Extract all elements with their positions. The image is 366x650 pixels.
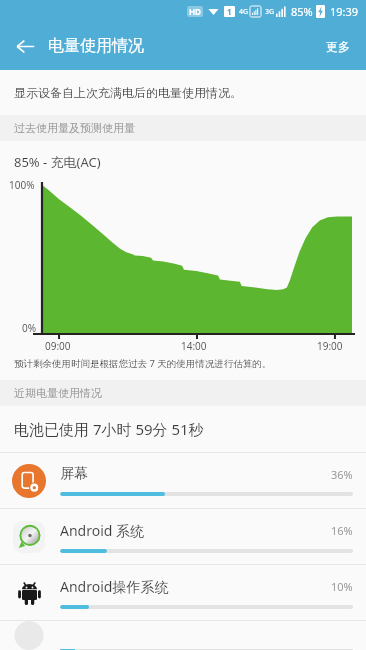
staticText: 屏幕 [60, 465, 331, 483]
staticText: 过去使用量及预测使用量 [14, 121, 135, 135]
staticText: 09:00 [45, 339, 71, 353]
staticText: HD [189, 6, 201, 17]
staticText: 1 [227, 6, 232, 17]
button[interactable]: 更多 [318, 31, 358, 62]
staticText: 19:00 [317, 339, 343, 353]
staticText: 更多 [326, 39, 350, 54]
staticText: 电量使用情况 [48, 36, 144, 56]
button[interactable]: 屏幕 [0, 453, 366, 508]
button[interactable]: Android 系统 [0, 509, 366, 564]
staticText: 近期电量使用情况 [14, 386, 102, 400]
staticText: 85% - 充电(AC) [14, 153, 101, 171]
staticText: 100% [9, 178, 35, 192]
staticText: 0% [22, 321, 37, 335]
staticText: 4G [239, 7, 249, 17]
staticText: 85% [291, 4, 313, 19]
staticText: 10% [331, 579, 353, 594]
staticText: 电池已使用 7小时 59分 51秒 [14, 419, 204, 439]
staticText: 显示设备自上次充满电后的电量使用情况。 [14, 85, 242, 100]
staticText: Android操作系统 [60, 577, 331, 596]
staticText: 3G [265, 7, 275, 17]
staticText: 16% [331, 523, 353, 538]
staticText: 预计剩余使用时间是根据您过去 7 天的使用情况进行估算的。 [14, 357, 272, 370]
button[interactable] [0, 621, 366, 650]
staticText: 36% [331, 467, 353, 482]
button[interactable]: Back [4, 25, 46, 67]
button[interactable]: Android操作系统 [0, 565, 366, 620]
staticText: 14:00 [181, 339, 207, 353]
staticText: Android 系统 [60, 521, 331, 540]
staticText: 19:39 [330, 4, 359, 19]
